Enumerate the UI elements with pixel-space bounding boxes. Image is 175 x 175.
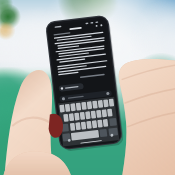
button[interactable]: Hand holding a phone showing a chat app [0,0,175,175]
